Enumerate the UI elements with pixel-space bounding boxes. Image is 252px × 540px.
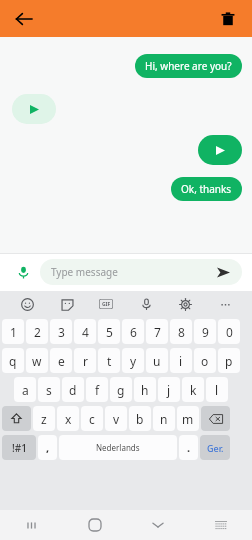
- button[interactable]: a: [14, 377, 36, 402]
- button[interactable]: Record voice: [10, 259, 36, 285]
- staticText: Ger.: [207, 442, 224, 454]
- staticText: l: [215, 382, 219, 398]
- button[interactable]: Ok, thanks: [171, 177, 242, 201]
- staticText: o: [201, 353, 209, 369]
- button[interactable]: Recent apps: [0, 510, 63, 540]
- button[interactable]: w: [26, 348, 48, 373]
- staticText: Type message: [51, 265, 215, 279]
- staticText: i: [179, 353, 183, 369]
- button[interactable]: z: [33, 406, 55, 431]
- button[interactable]: g: [110, 377, 132, 402]
- button[interactable]: m: [177, 406, 199, 431]
- staticText: r: [83, 353, 88, 369]
- button[interactable]: Play voice message: [12, 94, 56, 124]
- button[interactable]: Emoji: [16, 293, 38, 315]
- button[interactable]: u: [146, 348, 168, 373]
- button[interactable]: Hide keyboard: [126, 510, 189, 540]
- button[interactable]: 3: [50, 319, 72, 344]
- button[interactable]: Switch keyboard: [189, 510, 252, 540]
- staticText: 7: [154, 324, 161, 340]
- staticText: 2: [34, 324, 41, 340]
- staticText: p: [225, 353, 233, 369]
- staticText: b: [136, 411, 144, 427]
- button[interactable]: 1: [2, 319, 24, 344]
- button[interactable]: y: [122, 348, 144, 373]
- staticText: v: [113, 411, 120, 427]
- button[interactable]: Keyboard settings: [174, 293, 196, 315]
- button[interactable]: GIF: [95, 293, 117, 315]
- staticText: t: [107, 353, 112, 369]
- button[interactable]: v: [105, 406, 127, 431]
- button[interactable]: 8: [170, 319, 192, 344]
- button[interactable]: Play voice message: [198, 135, 242, 165]
- button[interactable]: h: [134, 377, 156, 402]
- staticText: f: [95, 382, 100, 398]
- staticText: h: [141, 382, 149, 398]
- staticText: s: [46, 382, 52, 398]
- button[interactable]: Hi, where are you?: [135, 54, 242, 78]
- button[interactable]: Ger.: [200, 435, 230, 460]
- button[interactable]: ,: [38, 435, 57, 460]
- button[interactable]: c: [81, 406, 103, 431]
- staticText: .: [187, 440, 191, 455]
- button[interactable]: Delete: [216, 7, 240, 31]
- staticText: j: [167, 382, 171, 398]
- staticText: 9: [202, 324, 209, 340]
- staticText: GIF: [102, 301, 111, 308]
- button[interactable]: 0: [218, 319, 240, 344]
- button[interactable]: 9: [194, 319, 216, 344]
- button[interactable]: i: [170, 348, 192, 373]
- staticText: 6: [130, 324, 137, 340]
- button[interactable]: More options: [214, 293, 236, 315]
- button[interactable]: Stickers: [56, 293, 78, 315]
- button[interactable]: r: [74, 348, 96, 373]
- button[interactable]: j: [158, 377, 180, 402]
- button[interactable]: 6: [122, 319, 144, 344]
- staticText: u: [153, 353, 161, 369]
- staticText: k: [190, 382, 197, 398]
- staticText: q: [9, 353, 17, 369]
- staticText: z: [41, 411, 47, 427]
- button[interactable]: n: [153, 406, 175, 431]
- staticText: Ok, thanks: [181, 182, 232, 196]
- button[interactable]: Back: [12, 7, 36, 31]
- staticText: 4: [82, 324, 89, 340]
- button[interactable]: Send: [215, 264, 231, 280]
- staticText: !#1: [12, 441, 27, 455]
- staticText: m: [182, 411, 194, 427]
- button[interactable]: p: [218, 348, 240, 373]
- button[interactable]: [2, 406, 31, 431]
- button[interactable]: [201, 406, 230, 431]
- button[interactable]: Voice input: [135, 293, 157, 315]
- button[interactable]: t: [98, 348, 120, 373]
- button[interactable]: .: [179, 435, 198, 460]
- button[interactable]: Home: [63, 510, 126, 540]
- staticText: g: [117, 382, 125, 398]
- button[interactable]: l: [206, 377, 228, 402]
- button[interactable]: Type message: [40, 259, 242, 285]
- staticText: e: [58, 353, 65, 369]
- staticText: x: [65, 411, 72, 427]
- button[interactable]: k: [182, 377, 204, 402]
- button[interactable]: d: [62, 377, 84, 402]
- button[interactable]: s: [38, 377, 60, 402]
- staticText: ,: [46, 440, 50, 455]
- staticText: c: [89, 411, 95, 427]
- button[interactable]: 2: [26, 319, 48, 344]
- staticText: 3: [58, 324, 65, 340]
- button[interactable]: q: [2, 348, 24, 373]
- button[interactable]: 4: [74, 319, 96, 344]
- button[interactable]: f: [86, 377, 108, 402]
- button[interactable]: 5: [98, 319, 120, 344]
- button[interactable]: Nederlands: [59, 435, 177, 460]
- button[interactable]: e: [50, 348, 72, 373]
- button[interactable]: b: [129, 406, 151, 431]
- staticText: n: [160, 411, 168, 427]
- button[interactable]: 7: [146, 319, 168, 344]
- staticText: Nederlands: [96, 442, 140, 453]
- button[interactable]: o: [194, 348, 216, 373]
- staticText: 1: [10, 324, 17, 340]
- staticText: 8: [178, 324, 185, 340]
- button[interactable]: !#1: [2, 435, 36, 460]
- button[interactable]: x: [57, 406, 79, 431]
